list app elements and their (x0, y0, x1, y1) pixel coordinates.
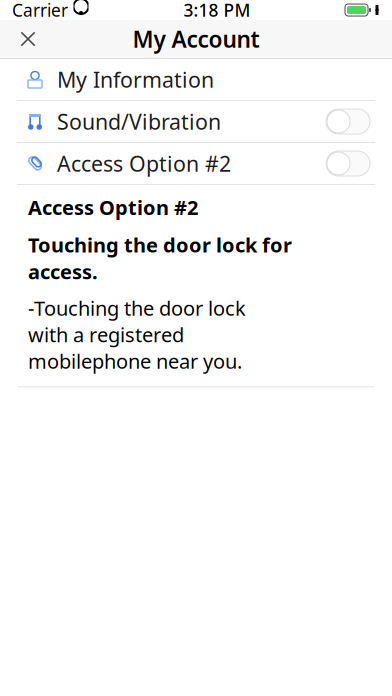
staticText: Access Option #2 (28, 194, 198, 221)
staticText: -Touching the door lock with a registere… (28, 295, 246, 374)
button[interactable]: My Information (0, 59, 392, 100)
button[interactable]: Access Option #2 (0, 143, 392, 184)
staticText: Carrier (12, 0, 68, 21)
button[interactable]: Sound/Vibration (0, 101, 392, 142)
staticText: 3:18 PM (183, 0, 250, 21)
staticText: Access Option #2 (57, 149, 231, 178)
staticText: My Information (57, 65, 214, 94)
button[interactable]: Close (6, 20, 50, 58)
staticText: My Account (132, 24, 259, 54)
staticText: Sound/Vibration (57, 107, 221, 136)
staticText: Touching the door lock for access. (28, 232, 292, 285)
